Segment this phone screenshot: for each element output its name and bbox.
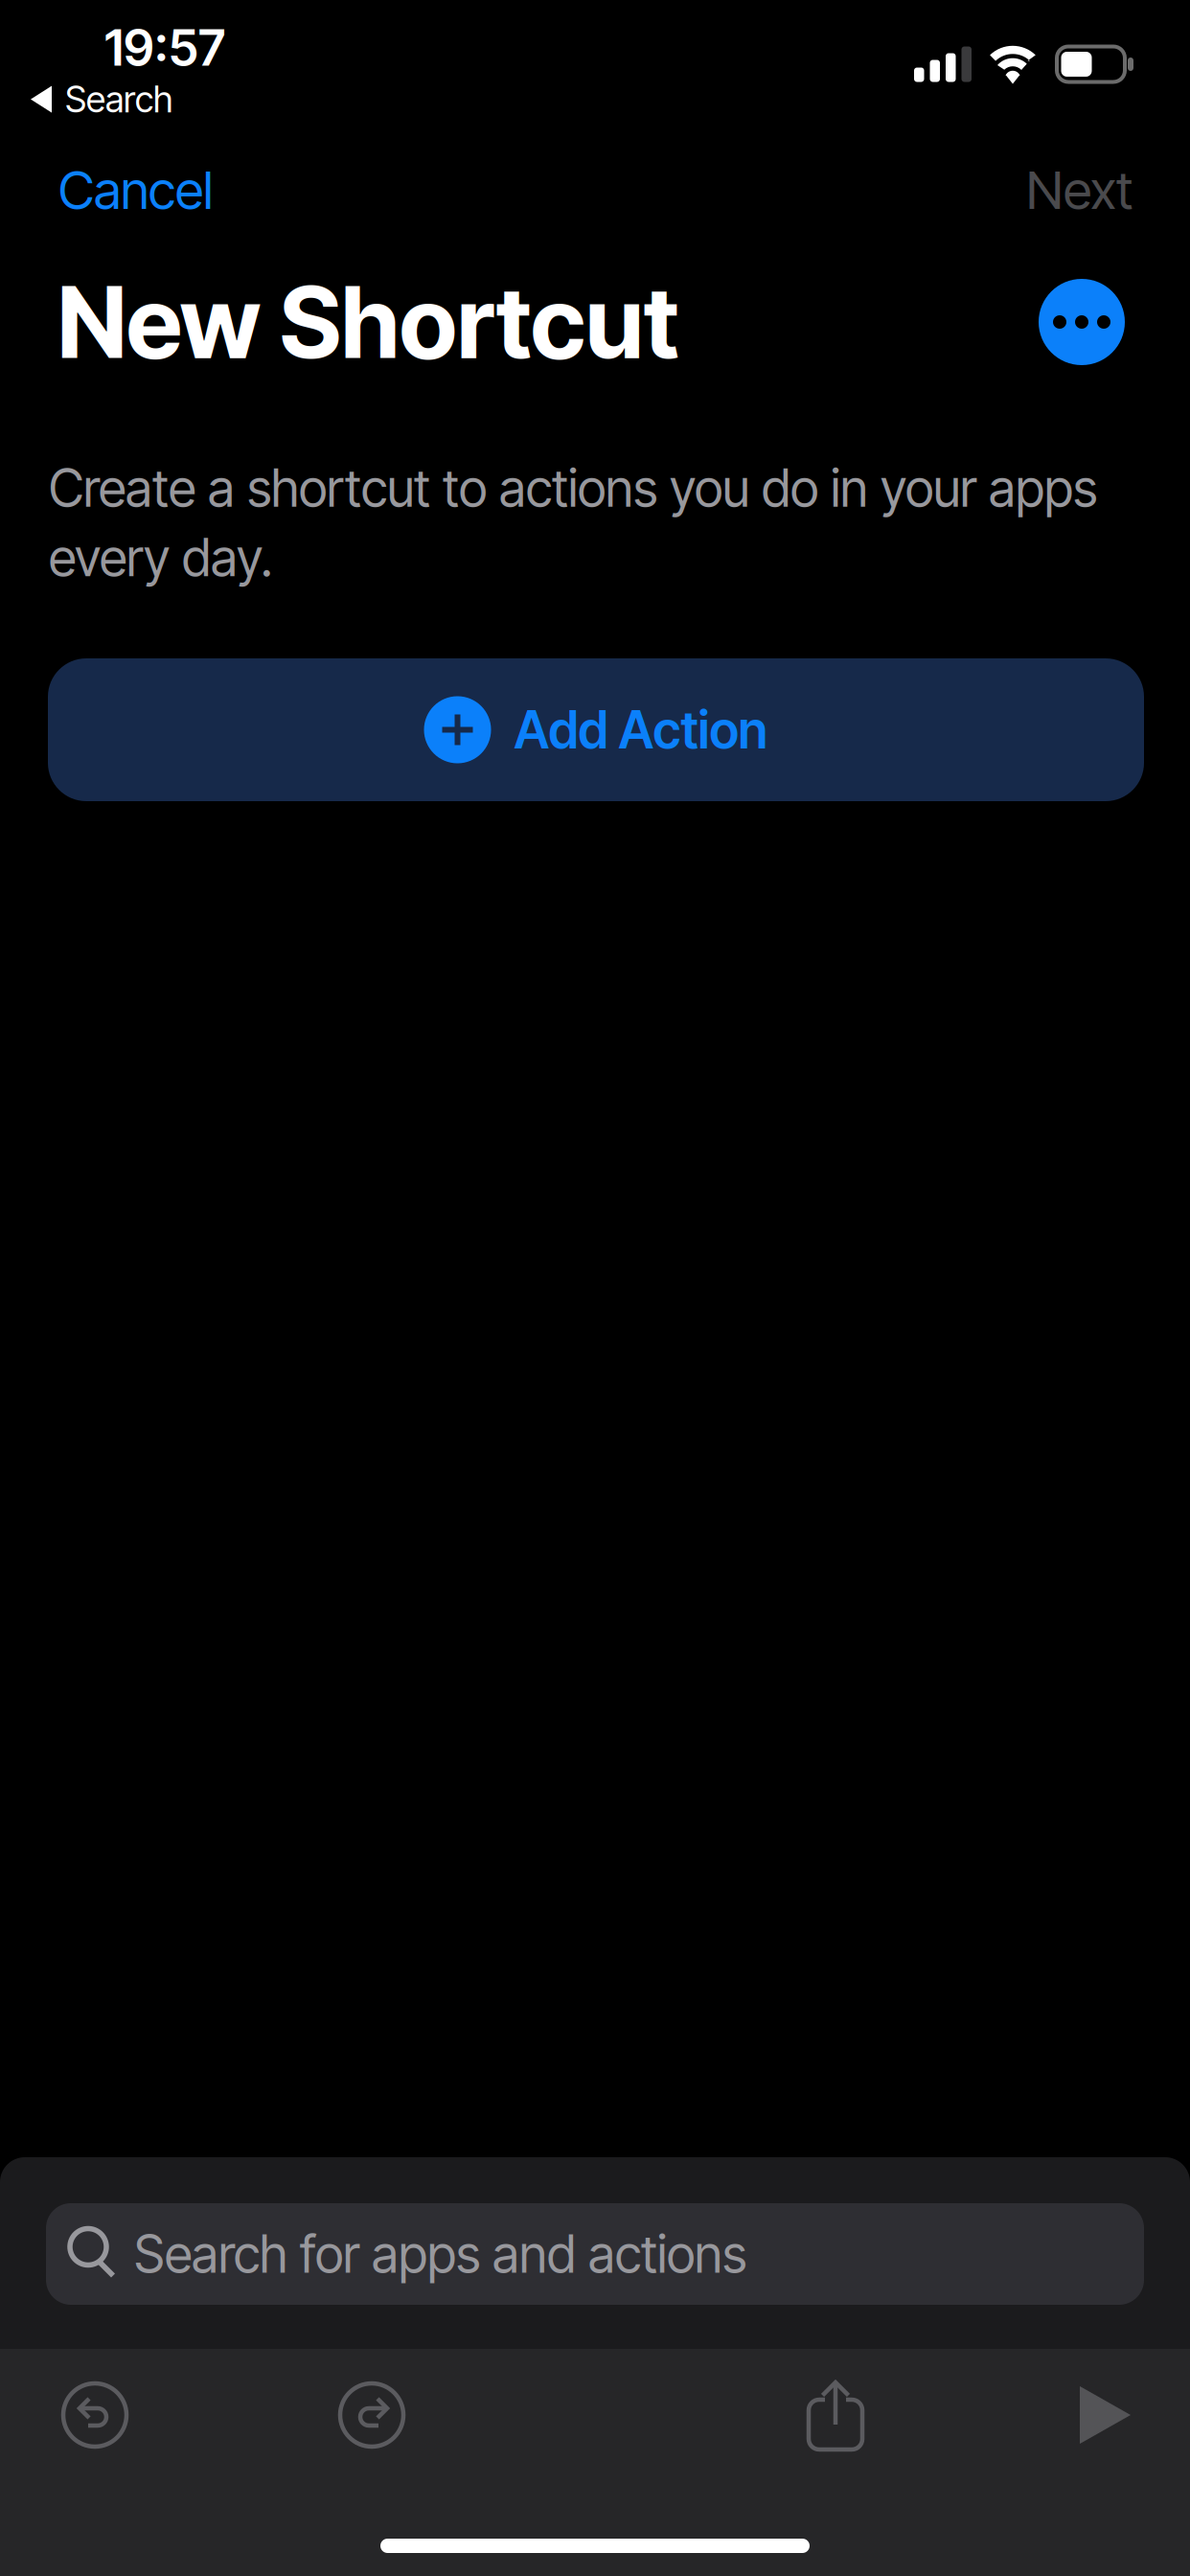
- button[interactable]: Undo: [52, 2383, 138, 2447]
- staticText: Next: [1026, 158, 1133, 221]
- button[interactable]: Redo: [329, 2383, 415, 2447]
- staticText: 19:57: [104, 17, 225, 78]
- button[interactable]: Next: [1011, 141, 1148, 239]
- staticText: Create a shortcut to actions you do in y…: [49, 457, 1097, 589]
- staticText: New Shortcut: [57, 263, 678, 382]
- button[interactable]: Search for apps and actions: [46, 2203, 1144, 2305]
- button[interactable]: Cancel: [43, 141, 228, 239]
- button[interactable]: Share: [796, 2380, 875, 2449]
- staticText: Search: [65, 78, 172, 121]
- button[interactable]: Search: [31, 78, 172, 121]
- button[interactable]: Run: [1065, 2384, 1145, 2446]
- button[interactable]: Add Action: [48, 658, 1144, 801]
- button[interactable]: More options: [1039, 279, 1125, 365]
- staticText: Add Action: [514, 699, 768, 761]
- staticText: Cancel: [58, 158, 213, 221]
- staticText: Search for apps and actions: [134, 2223, 746, 2285]
